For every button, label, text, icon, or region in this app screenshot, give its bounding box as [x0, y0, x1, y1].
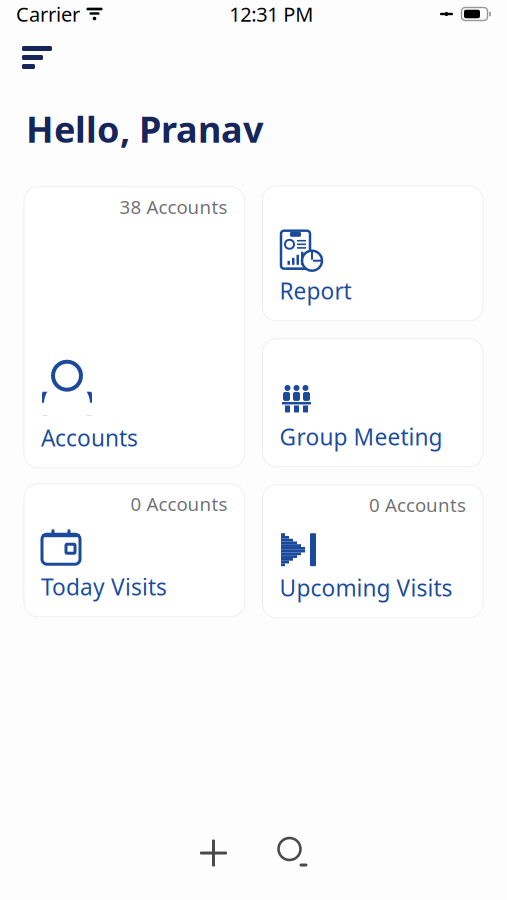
button[interactable]: Search — [270, 830, 316, 876]
staticText: 38 Accounts — [119, 194, 227, 219]
button[interactable]: Add — [190, 830, 236, 876]
staticText: Carrier — [16, 1, 80, 27]
staticText: Accounts — [41, 423, 138, 453]
staticText: 12:31 PM — [229, 1, 313, 27]
staticText: 0 Accounts — [369, 492, 466, 517]
staticText: Upcoming Visits — [279, 573, 452, 603]
staticText: Today Visits — [41, 572, 167, 602]
button[interactable]: Menu — [14, 38, 60, 77]
staticText: Hello, Pranav — [26, 105, 264, 153]
staticText: Report — [279, 276, 351, 306]
button[interactable] — [262, 186, 483, 321]
button[interactable]: 38 Accounts — [24, 187, 244, 468]
button[interactable]: 0 Accounts — [24, 484, 244, 617]
button[interactable] — [262, 339, 483, 467]
staticText: Group Meeting — [279, 422, 442, 452]
staticText: 0 Accounts — [130, 491, 227, 516]
button[interactable]: 0 Accounts — [262, 485, 483, 618]
